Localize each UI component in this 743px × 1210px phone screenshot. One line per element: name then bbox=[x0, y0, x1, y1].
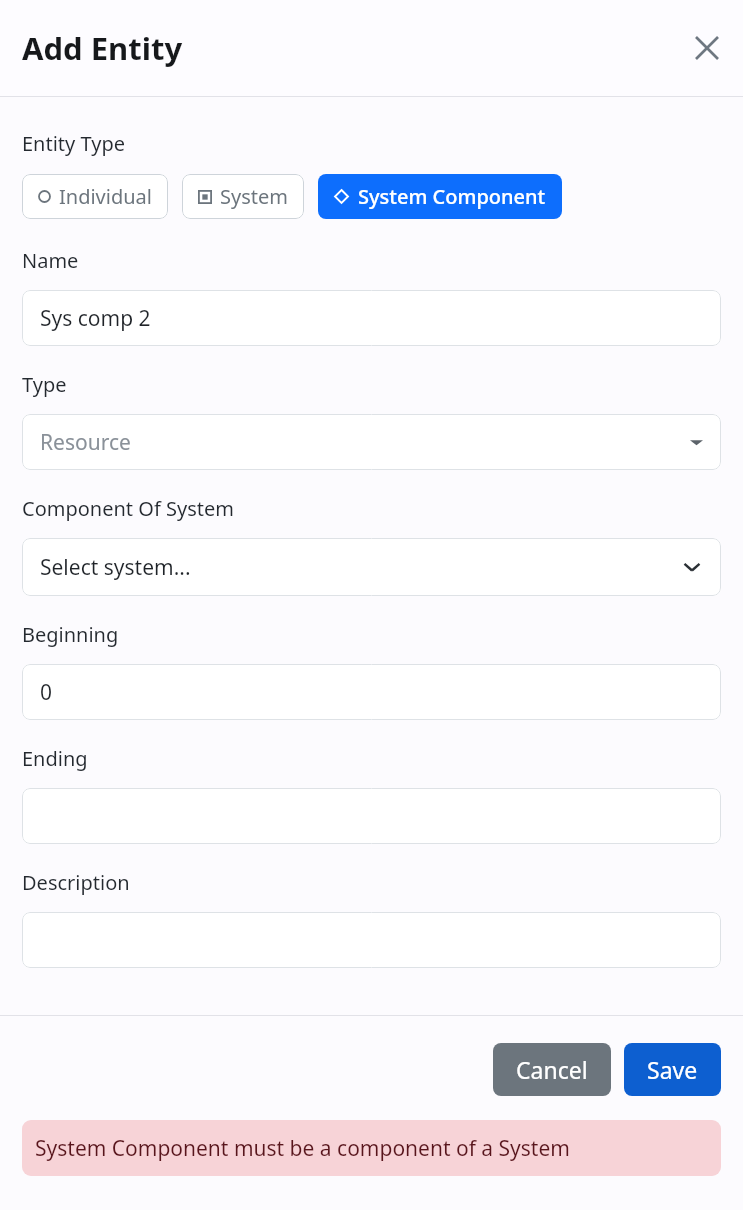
staticText: Beginning bbox=[22, 621, 119, 648]
button[interactable]: 0 bbox=[22, 664, 721, 720]
button[interactable] bbox=[22, 912, 721, 968]
button[interactable]: Sys comp 2 bbox=[22, 290, 721, 346]
staticText: Name bbox=[22, 247, 79, 274]
staticText: 0 bbox=[40, 678, 53, 707]
staticText: System Component must be a component of … bbox=[35, 1134, 570, 1163]
staticText: Type bbox=[22, 371, 67, 398]
button[interactable]: Select system... bbox=[22, 538, 721, 596]
button[interactable]: System bbox=[182, 174, 304, 219]
staticText: Add Entity bbox=[22, 27, 183, 69]
staticText: Entity Type bbox=[22, 130, 125, 157]
button[interactable]: Save bbox=[624, 1043, 721, 1096]
button[interactable]: System Component bbox=[318, 174, 562, 219]
staticText: System bbox=[220, 183, 288, 210]
staticText: Sys comp 2 bbox=[40, 304, 151, 333]
button[interactable]: Resource bbox=[22, 414, 721, 470]
staticText: Select system... bbox=[40, 553, 191, 582]
button[interactable]: Individual bbox=[22, 174, 168, 219]
staticText: Cancel bbox=[516, 1054, 588, 1085]
staticText: Component Of System bbox=[22, 495, 234, 522]
button[interactable] bbox=[22, 788, 721, 844]
staticText: Individual bbox=[59, 183, 152, 210]
staticText: Ending bbox=[22, 745, 88, 772]
staticText: Save bbox=[647, 1054, 698, 1085]
button[interactable]: Cancel bbox=[493, 1043, 611, 1096]
staticText: System Component bbox=[358, 183, 546, 210]
staticText: Description bbox=[22, 869, 130, 896]
button[interactable]: Close bbox=[685, 26, 729, 70]
staticText: Resource bbox=[40, 428, 131, 457]
